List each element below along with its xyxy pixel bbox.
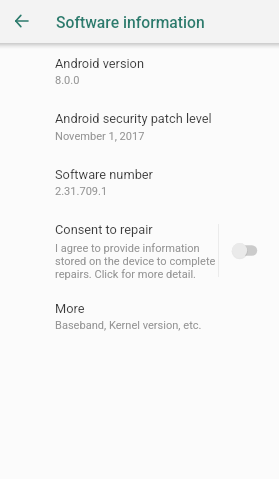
staticText: I agree to provide information stored on…	[55, 242, 218, 281]
staticText: 2.31.709.1	[55, 185, 108, 198]
button[interactable]: Software number	[0, 160, 279, 208]
button[interactable]: Consent to repair	[0, 215, 279, 285]
button[interactable]: Navigate up	[7, 7, 35, 35]
button[interactable]: Android version	[0, 48, 279, 96]
button[interactable]: Android security patch level	[0, 104, 279, 152]
staticText: Baseband, Kernel version, etc.	[55, 319, 202, 332]
staticText: Android version	[55, 56, 144, 71]
button[interactable]: More	[0, 294, 279, 340]
button[interactable]: Consent to repair, off	[225, 233, 265, 267]
staticText: 8.0.0	[55, 74, 80, 87]
staticText: November 1, 2017	[55, 130, 145, 143]
staticText: More	[55, 301, 85, 316]
staticText: Android security patch level	[55, 111, 212, 126]
staticText: Consent to repair	[55, 222, 153, 237]
staticText: Software number	[55, 167, 153, 182]
staticText: Software information	[56, 13, 205, 31]
